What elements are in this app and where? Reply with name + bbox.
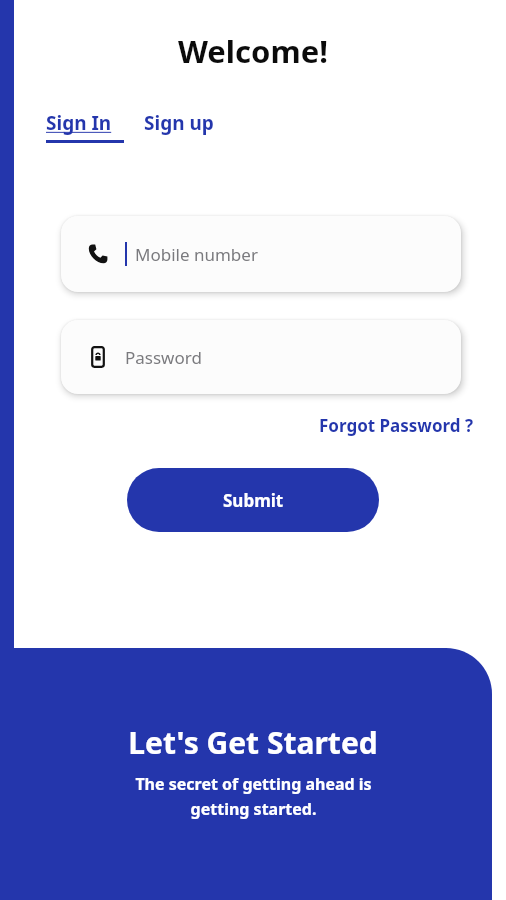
staticText: Let's Get Started: [128, 722, 378, 763]
staticText: Submit: [223, 489, 284, 512]
other: Phone: [86, 242, 110, 266]
staticText: Password: [125, 346, 202, 369]
button[interactable]: Sign up: [142, 106, 216, 140]
staticText: Sign In: [46, 110, 112, 136]
button[interactable]: Password: [61, 320, 461, 394]
staticText: Mobile number: [135, 243, 258, 266]
other: Password: [86, 345, 110, 369]
staticText: Welcome!: [178, 30, 328, 72]
button[interactable]: Sign In: [44, 106, 114, 140]
button[interactable]: Phone: [61, 216, 461, 292]
staticText: Sign up: [144, 110, 214, 136]
button[interactable]: Forgot Password ?: [315, 410, 478, 441]
button[interactable]: Submit: [127, 468, 379, 532]
staticText: Forgot Password ?: [319, 414, 474, 437]
staticText: The secret of getting ahead is getting s…: [135, 773, 372, 819]
